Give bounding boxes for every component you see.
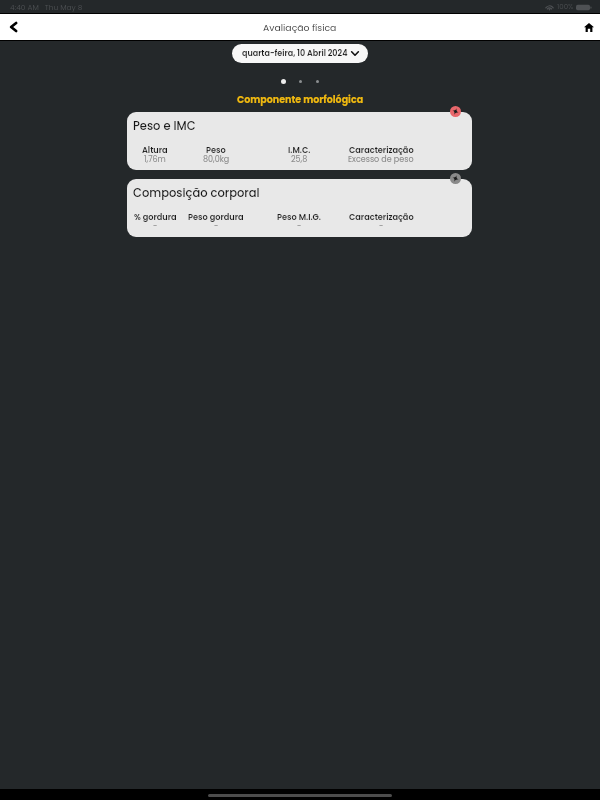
staticText: - [297, 221, 302, 232]
staticText: Peso M.I.G. [277, 211, 321, 222]
staticText: Componente morfológica [0, 93, 600, 106]
button[interactable]: Peso e IMC [127, 112, 472, 170]
staticText: - [153, 221, 158, 232]
staticText: quarta-feira, 10 Abril 2024 [242, 48, 348, 59]
staticText: Caracterização [349, 211, 414, 222]
button[interactable]: Info [450, 106, 461, 117]
staticText: 80,0kg [203, 154, 230, 165]
staticText: Avaliação física [263, 21, 337, 34]
button[interactable]: Info [450, 173, 461, 184]
staticText: I.M.C. [288, 144, 311, 155]
staticText: Altura [142, 144, 168, 155]
button[interactable]: Back [0, 14, 26, 40]
staticText: 100% [557, 2, 574, 12]
staticText: Excesso de peso [348, 154, 414, 165]
staticText: Caracterização [349, 144, 414, 155]
staticText: 25,8 [291, 154, 308, 165]
staticText: % gordura [134, 211, 177, 222]
button[interactable]: Home [576, 14, 600, 40]
staticText: Peso e IMC [133, 118, 196, 134]
staticText: Peso gordura [188, 211, 244, 222]
staticText: Composição corporal [133, 185, 260, 201]
staticText: - [379, 221, 384, 232]
button[interactable]: Composição corporal [127, 179, 472, 237]
staticText: Peso [206, 144, 226, 155]
staticText: 1,76m [144, 154, 166, 165]
staticText: 4:40 AM Thu May 8 [10, 2, 83, 12]
button[interactable]: quarta-feira, 10 Abril 2024 [232, 44, 368, 63]
staticText: - [214, 221, 219, 232]
